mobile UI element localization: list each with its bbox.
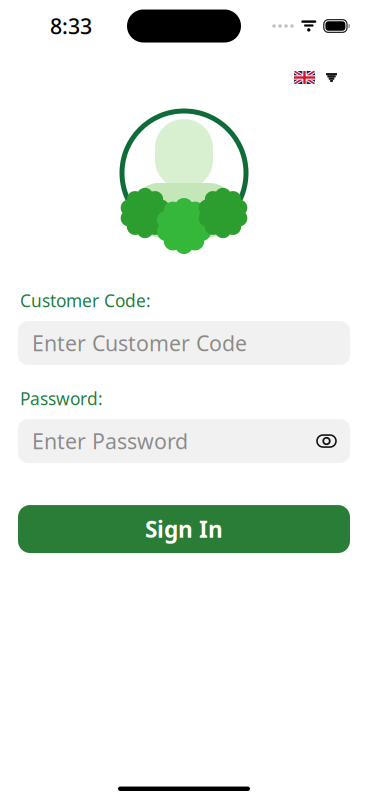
button[interactable]: Sign In xyxy=(18,505,350,553)
button[interactable]: Enter Password xyxy=(18,419,350,463)
button[interactable]: Enter Customer Code xyxy=(18,321,350,365)
staticText: Enter Customer Code xyxy=(32,329,247,357)
staticText: Customer Code: xyxy=(20,289,151,312)
staticText: Sign In xyxy=(145,514,223,544)
staticText: 8:33 xyxy=(50,12,92,40)
button[interactable]: Select language xyxy=(289,64,342,91)
staticText: Enter Password xyxy=(32,427,188,455)
staticText: Password: xyxy=(20,387,103,410)
